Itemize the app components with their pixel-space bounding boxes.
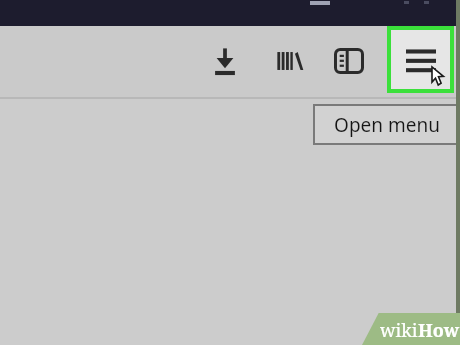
staticText: How xyxy=(418,318,460,343)
staticText: wiki xyxy=(380,318,418,343)
button[interactable]: Open menu xyxy=(313,104,460,145)
button[interactable]: Sidebar xyxy=(325,37,373,85)
button[interactable]: Downloads xyxy=(201,37,249,85)
button[interactable]: Open menu xyxy=(391,30,450,89)
button[interactable]: Library xyxy=(264,37,312,85)
staticText: Open menu xyxy=(334,112,440,138)
